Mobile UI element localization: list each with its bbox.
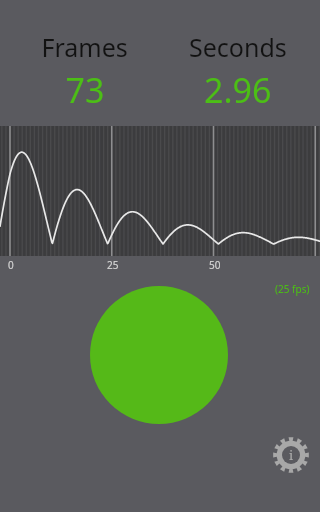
button[interactable]: Start — [90, 286, 228, 424]
button[interactable]: Settings — [272, 436, 310, 474]
